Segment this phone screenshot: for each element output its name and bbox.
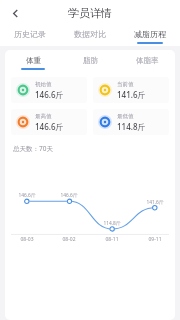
button[interactable]: 最低值	[93, 109, 169, 135]
button[interactable]: 数据对比	[60, 26, 120, 46]
button[interactable]: 减脂历程	[120, 26, 180, 46]
staticText: 体脂率	[136, 56, 159, 65]
button[interactable]: 初始值	[11, 77, 87, 103]
staticText: 数据对比	[74, 29, 106, 39]
button[interactable]: 体脂率	[118, 54, 175, 72]
staticText: 09-11	[148, 236, 162, 243]
button[interactable]: 当前值	[93, 77, 169, 103]
staticText: 初始值	[35, 81, 52, 88]
button[interactable]: 最高值	[11, 109, 87, 135]
staticText: 学员详情	[68, 6, 112, 20]
staticText: 146.6斤	[60, 192, 78, 199]
staticText: 114.8斤	[103, 220, 121, 227]
staticText: 历史记录	[14, 29, 46, 39]
staticText: 总天数：70天	[13, 144, 53, 153]
staticText: 146.6斤	[18, 192, 36, 199]
staticText: 08-03	[20, 236, 34, 243]
staticText: 146.6斤	[35, 121, 64, 132]
staticText: 08-11	[105, 236, 119, 243]
staticText: 141.6斤	[146, 199, 164, 206]
button[interactable]: Back	[4, 2, 26, 24]
staticText: 114.8斤	[117, 121, 146, 132]
staticText: 最低值	[117, 113, 134, 120]
button[interactable]: 历史记录	[0, 26, 60, 46]
button[interactable]: 体重	[5, 54, 61, 72]
button[interactable]: 脂肪	[61, 54, 118, 72]
staticText: 146.6斤	[35, 89, 64, 100]
staticText: 141.6斤	[117, 89, 146, 100]
staticText: 减脂历程	[134, 29, 166, 39]
staticText: 当前值	[117, 81, 134, 88]
staticText: 08-02	[62, 236, 76, 243]
staticText: 体重	[26, 56, 41, 65]
staticText: 最高值	[35, 113, 52, 120]
staticText: 脂肪	[83, 56, 98, 65]
